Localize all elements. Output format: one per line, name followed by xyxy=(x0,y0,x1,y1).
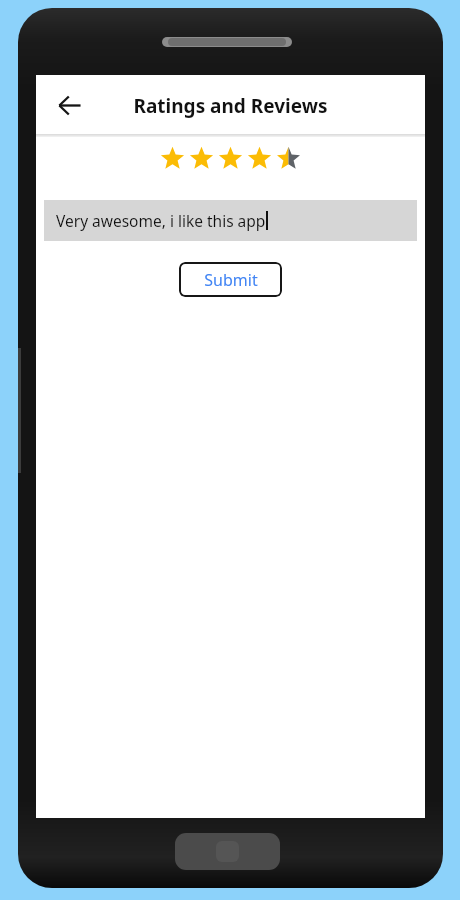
button[interactable]: Back xyxy=(47,83,91,127)
button[interactable]: Rate 4 stars xyxy=(245,145,274,172)
staticText: Ratings and Reviews xyxy=(133,93,328,119)
button[interactable]: Rate 1 stars xyxy=(158,145,187,172)
button[interactable]: Submit xyxy=(179,262,282,297)
staticText: Submit xyxy=(204,269,258,291)
button[interactable]: Rate 5 stars xyxy=(274,145,303,172)
button[interactable]: Very awesome, i like this app xyxy=(44,200,417,241)
button[interactable]: Home xyxy=(175,833,280,870)
button[interactable]: Rate 3 stars xyxy=(216,145,245,172)
button[interactable]: Rate 2 stars xyxy=(187,145,216,172)
staticText: Very awesome, i like this app xyxy=(56,210,266,231)
